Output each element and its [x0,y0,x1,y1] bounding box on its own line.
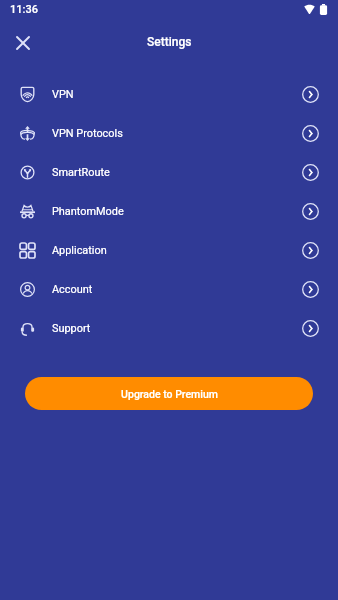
staticText: Application [52,244,107,257]
button[interactable]: PhantomMode [0,192,338,231]
staticText: 11:36 [10,3,38,16]
button[interactable]: Support [0,309,338,348]
staticText: Account [52,283,93,296]
button[interactable]: SmartRoute [0,153,338,192]
staticText: VPN Protocols [52,127,123,140]
button[interactable]: VPN [0,75,338,114]
button[interactable]: Application [0,231,338,270]
staticText: Support [52,322,91,335]
button[interactable]: Upgrade to Premium [25,377,313,410]
staticText: PhantomMode [52,205,124,218]
button[interactable]: Close [6,26,39,59]
staticText: VPN [52,88,74,101]
staticText: Upgrade to Premium [121,388,218,400]
staticText: SmartRoute [52,166,110,179]
button[interactable]: VPN Protocols [0,114,338,153]
staticText: Settings [147,35,192,49]
button[interactable]: Account [0,270,338,309]
